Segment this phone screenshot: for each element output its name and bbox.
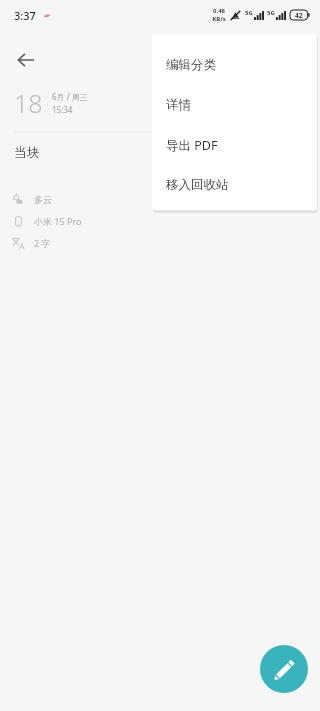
button[interactable]: 移入回收站	[152, 165, 317, 205]
staticText: 当块	[14, 144, 40, 160]
staticText: 5G	[267, 9, 275, 17]
staticText: 编辑分类	[166, 57, 216, 73]
staticText: 3:37	[14, 8, 36, 23]
staticText: 18	[14, 86, 43, 120]
button[interactable]: Back	[6, 40, 46, 80]
staticText: 多云	[34, 194, 52, 205]
staticText: 15:34	[52, 104, 73, 115]
staticText: KB/s	[212, 15, 226, 23]
staticText: 小米 15 Pro	[34, 215, 82, 227]
button[interactable]: 导出 PDF	[152, 125, 317, 165]
staticText: 详情	[166, 97, 191, 113]
button[interactable]: 详情	[152, 85, 317, 125]
staticText: 6月 / 周三	[52, 91, 88, 102]
button[interactable]: Edit	[260, 645, 308, 693]
button[interactable]: 编辑分类	[152, 45, 317, 85]
staticText: 2 字	[34, 237, 51, 249]
staticText: 导出 PDF	[166, 137, 218, 154]
staticText: 42	[295, 11, 303, 20]
staticText: 0.48	[213, 7, 225, 15]
staticText: 移入回收站	[166, 177, 229, 193]
staticText: 5G	[245, 9, 253, 17]
